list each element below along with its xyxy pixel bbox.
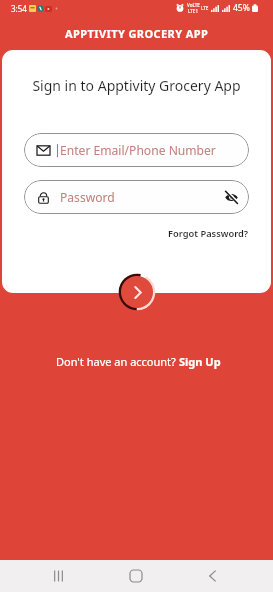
staticText: LTE1 bbox=[188, 8, 199, 14]
staticText: Forgot Password? bbox=[168, 227, 249, 240]
other: Show password bbox=[225, 191, 238, 204]
staticText: VoLTE bbox=[187, 2, 200, 8]
button[interactable]: Back bbox=[174, 560, 250, 592]
staticText: APPTIVITY GROCERY APP bbox=[65, 26, 209, 41]
button[interactable]: Password bbox=[24, 180, 249, 214]
button[interactable]: Sign in bbox=[121, 276, 153, 308]
button[interactable]: Enter Email/Phone Number bbox=[24, 133, 249, 167]
button[interactable]: Home bbox=[98, 560, 174, 592]
button[interactable]: Recents bbox=[20, 560, 96, 592]
staticText: Enter Email/Phone Number bbox=[60, 142, 216, 158]
staticText: Don't have an account? bbox=[56, 354, 179, 369]
staticText: Sign Up bbox=[179, 354, 221, 369]
staticText: Sign in to Apptivity Grocery App bbox=[2, 76, 271, 95]
staticText: 3:54 bbox=[11, 3, 27, 14]
button[interactable]: Don't have an account? bbox=[56, 354, 221, 369]
staticText: LTE bbox=[201, 5, 209, 11]
button[interactable]: Forgot Password? bbox=[168, 227, 249, 240]
staticText: 45% bbox=[233, 2, 250, 14]
staticText: Password bbox=[60, 189, 115, 205]
